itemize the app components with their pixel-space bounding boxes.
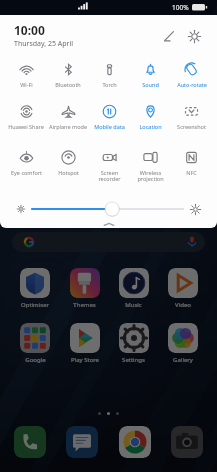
button[interactable]: chrome (119, 426, 151, 458)
button[interactable]: Bluetooth (47, 57, 89, 99)
staticText: Mobile data (94, 123, 125, 130)
button[interactable]: Mobile data (89, 99, 130, 145)
staticText: Auto-rotate (177, 81, 207, 88)
staticText: Eye comfort (11, 169, 42, 176)
button[interactable]: Auto-rotate (171, 57, 212, 99)
staticText: Location (139, 123, 162, 130)
button[interactable]: Sound (130, 57, 171, 99)
staticText: Screen recorder (98, 169, 121, 183)
button[interactable]: Edit quick settings (155, 23, 181, 49)
button[interactable]: Video (158, 268, 207, 309)
button[interactable]: Torch (89, 57, 130, 99)
staticText: Settings (122, 356, 145, 364)
staticText: Thursday, 25 April (14, 39, 74, 49)
button[interactable]: Google (10, 323, 60, 364)
button[interactable]: Google search (12, 232, 205, 252)
button[interactable]: Decrease brightness (12, 200, 30, 218)
button[interactable]: Gallery (158, 323, 207, 364)
button[interactable]: Screen recorder (89, 145, 130, 195)
button[interactable]: Eye comfort (5, 145, 47, 195)
staticText: Sound (142, 81, 159, 88)
button[interactable]: Huawei Share (5, 99, 47, 145)
staticText: Google (25, 356, 46, 364)
staticText: NFC (186, 169, 197, 176)
button[interactable]: Hotspot (47, 145, 89, 195)
button[interactable]: phone (14, 426, 46, 458)
staticText: Screenshot (177, 123, 206, 130)
staticText: Airplane mode (49, 123, 87, 130)
button[interactable]: Collapse panel (0, 221, 217, 228)
button[interactable]: messages (66, 426, 98, 458)
button[interactable]: Location (130, 99, 171, 145)
button[interactable]: Settings (181, 23, 207, 49)
button[interactable]: camera (171, 426, 203, 458)
staticText: Themes (73, 301, 96, 309)
staticText: Music (125, 301, 142, 309)
button[interactable]: Screenshot (171, 99, 212, 145)
button[interactable]: Wireless projection (130, 145, 171, 195)
button[interactable]: Settings (109, 323, 158, 364)
staticText: Gallery (173, 356, 193, 364)
button[interactable]: Increase brightness (185, 199, 205, 219)
staticText: Play Store (71, 356, 99, 364)
button[interactable]: Wi-Fi (5, 57, 47, 99)
button[interactable]: Brightness slider (30, 199, 185, 219)
staticText: 10:00 (14, 22, 45, 38)
staticText: 100% (172, 3, 189, 12)
staticText: Video (175, 301, 191, 309)
staticText: Bluetooth (55, 81, 81, 88)
button[interactable]: Themes (60, 268, 109, 309)
staticText: Torch (102, 81, 117, 88)
staticText: Wireless projection (137, 169, 164, 183)
button[interactable]: Airplane mode (47, 99, 89, 145)
button[interactable]: Play Store (60, 323, 109, 364)
button[interactable]: NFC (171, 145, 212, 195)
button[interactable]: Optimiser (10, 268, 60, 309)
staticText: Huawei Share (8, 123, 44, 130)
staticText: Hotspot (58, 169, 79, 176)
button[interactable]: Music (109, 268, 158, 309)
staticText: Wi-Fi (20, 81, 33, 88)
staticText: Optimiser (21, 301, 49, 309)
